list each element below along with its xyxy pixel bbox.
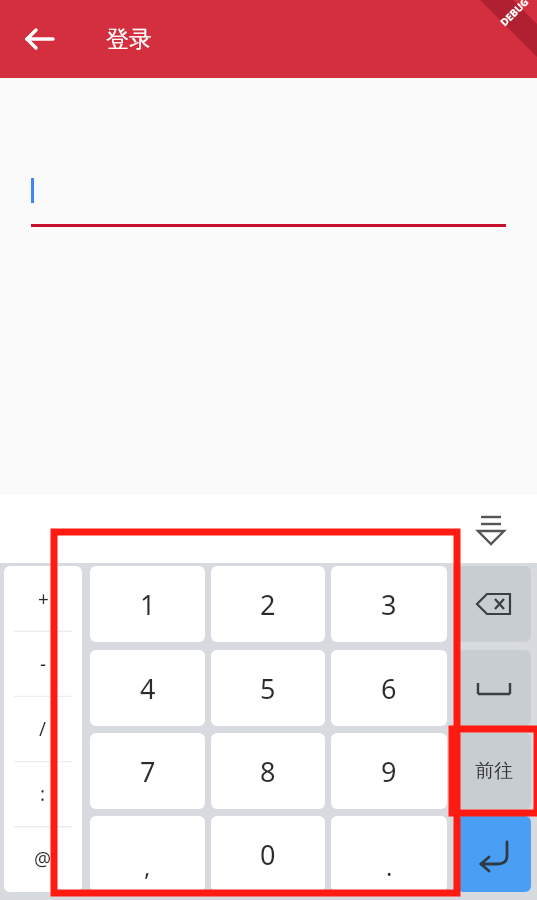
button[interactable]: :: [4, 761, 82, 826]
button[interactable]: 6: [331, 650, 447, 726]
staticText: @: [34, 846, 52, 872]
button[interactable]: 9: [331, 733, 447, 809]
staticText: 登录: [106, 25, 152, 54]
button[interactable]: 3: [331, 566, 447, 642]
staticText: 3: [381, 586, 397, 623]
button[interactable]: 前往: [457, 733, 531, 809]
button[interactable]: 5: [211, 650, 325, 726]
staticText: 5: [260, 670, 276, 707]
staticText: DEBUG: [497, 0, 532, 29]
button[interactable]: 1: [90, 566, 205, 642]
button[interactable]: +: [4, 566, 82, 631]
button[interactable]: -: [4, 631, 82, 696]
button[interactable]: 2: [211, 566, 325, 642]
button[interactable]: /: [4, 696, 82, 761]
button[interactable]: 8: [211, 733, 325, 809]
staticText: +: [38, 586, 49, 612]
staticText: :: [40, 781, 46, 807]
button[interactable]: 4: [90, 650, 205, 726]
staticText: 8: [260, 753, 276, 790]
staticText: -: [40, 651, 47, 677]
staticText: 9: [381, 753, 397, 790]
button[interactable]: Space: [457, 650, 531, 726]
staticText: 0: [260, 836, 276, 873]
staticText: ,: [144, 850, 151, 883]
button[interactable]: 7: [90, 733, 205, 809]
button[interactable]: ,: [90, 816, 205, 892]
button[interactable]: Backspace: [457, 566, 531, 642]
staticText: 4: [140, 670, 156, 707]
button[interactable]: Back: [16, 17, 64, 61]
button[interactable]: Enter: [457, 816, 531, 892]
button[interactable]: @: [4, 826, 82, 891]
button[interactable]: 0: [211, 816, 325, 892]
staticText: 1: [140, 586, 156, 623]
button[interactable]: .: [331, 816, 447, 892]
staticText: 7: [140, 753, 156, 790]
staticText: 6: [381, 670, 397, 707]
staticText: .: [386, 850, 393, 883]
staticText: /: [39, 716, 47, 742]
staticText: 2: [260, 586, 276, 623]
staticText: 前往: [475, 759, 513, 783]
button[interactable]: Hide keyboard: [470, 507, 512, 549]
